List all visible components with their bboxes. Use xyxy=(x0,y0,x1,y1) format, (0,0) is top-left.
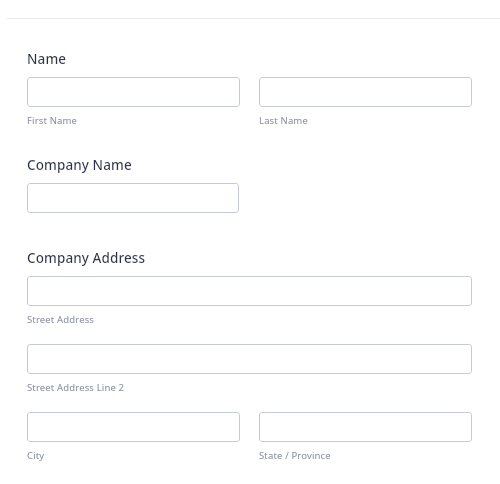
staticText: Street Address Line 2 xyxy=(27,381,125,394)
button[interactable]: Last Name xyxy=(259,77,472,107)
button[interactable]: Street Address xyxy=(27,276,472,306)
button[interactable]: First Name xyxy=(27,77,240,107)
staticText: Company Name xyxy=(27,156,132,174)
staticText: First Name xyxy=(27,114,78,127)
staticText: Last Name xyxy=(259,114,308,127)
staticText: Name xyxy=(27,50,67,68)
button[interactable]: City xyxy=(27,412,240,442)
staticText: City xyxy=(27,449,45,462)
button[interactable]: Street Address Line 2 xyxy=(27,344,472,374)
button[interactable]: Company Name xyxy=(27,183,239,213)
staticText: Street Address xyxy=(27,313,95,326)
staticText: Company Address xyxy=(27,249,146,267)
staticText: State / Province xyxy=(259,449,331,462)
button[interactable]: State / Province xyxy=(259,412,472,442)
